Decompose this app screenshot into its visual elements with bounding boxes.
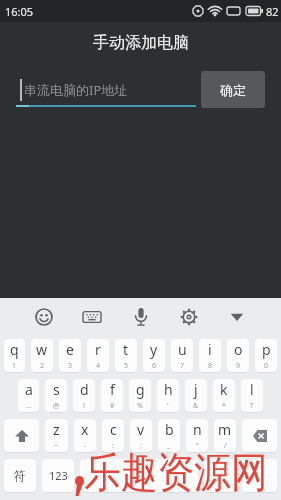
button[interactable]: b xyxy=(158,419,180,452)
button[interactable]: y xyxy=(143,339,165,372)
button[interactable]: u xyxy=(171,339,193,372)
button[interactable]: v xyxy=(130,419,152,452)
staticText: 16:05 xyxy=(5,4,34,19)
staticText: 1 xyxy=(12,361,17,371)
staticText: o xyxy=(234,340,243,359)
button[interactable]: g xyxy=(129,379,151,412)
staticText: ! xyxy=(83,401,85,411)
staticText: 7 xyxy=(180,361,185,371)
staticText: h xyxy=(164,380,173,399)
button[interactable]: t xyxy=(115,339,137,372)
button[interactable]: k xyxy=(213,379,235,412)
staticText: n xyxy=(193,420,202,439)
button[interactable]: x xyxy=(74,419,96,452)
staticText: 2 xyxy=(40,361,45,371)
staticText: ... xyxy=(26,401,32,411)
staticText: ? xyxy=(250,401,254,411)
button[interactable]: s xyxy=(45,379,67,412)
button[interactable]: h xyxy=(157,379,179,412)
staticText: c xyxy=(110,420,117,439)
staticText: 。 xyxy=(214,468,226,483)
staticText: y xyxy=(150,340,158,359)
staticText: u xyxy=(178,340,187,359)
staticText: t xyxy=(123,340,129,359)
staticText: 4 xyxy=(96,361,101,371)
button[interactable]: q xyxy=(4,339,25,372)
staticText: d xyxy=(80,380,89,399)
staticText: 9 xyxy=(236,361,241,371)
staticText: ~ xyxy=(54,441,59,451)
staticText: 123 xyxy=(49,468,68,483)
staticText: 串流电脑的IP地址 xyxy=(24,81,128,99)
staticText: z xyxy=(53,420,60,439)
staticText: v xyxy=(137,420,145,439)
button[interactable]: l xyxy=(241,379,263,412)
staticText: ' xyxy=(167,401,169,411)
button[interactable] xyxy=(4,419,39,452)
staticText: 符 xyxy=(14,468,26,483)
staticText: x xyxy=(81,420,89,439)
button[interactable]: c xyxy=(102,419,124,452)
button[interactable]: w xyxy=(31,339,53,372)
staticText: f xyxy=(110,380,115,399)
button[interactable]: p xyxy=(255,339,277,372)
staticText: g xyxy=(136,380,145,399)
button[interactable] xyxy=(80,459,198,492)
staticText: : xyxy=(112,441,114,451)
staticText: i xyxy=(208,340,212,359)
button[interactable]: i xyxy=(199,339,221,372)
button[interactable]: m xyxy=(214,419,236,452)
staticText: 确定 xyxy=(220,82,246,98)
staticText: p xyxy=(262,340,271,359)
staticText: 8 xyxy=(208,361,213,371)
button[interactable]: r xyxy=(87,339,109,372)
button[interactable]: f xyxy=(101,379,123,412)
staticText: m xyxy=(218,420,232,439)
staticText: l xyxy=(250,380,254,399)
button[interactable] xyxy=(242,419,277,452)
button[interactable] xyxy=(125,301,157,333)
button[interactable] xyxy=(173,301,205,333)
button[interactable]: j xyxy=(185,379,207,412)
staticText: * xyxy=(222,401,226,411)
staticText: j xyxy=(194,380,198,399)
button[interactable]: d xyxy=(73,379,95,412)
staticText: 乐趣资源网 xyxy=(84,447,268,500)
button[interactable]: 123 xyxy=(42,459,74,492)
staticText: e xyxy=(66,340,74,359)
staticText: s xyxy=(53,380,60,399)
staticText: k xyxy=(220,380,228,399)
button[interactable]: o xyxy=(227,339,249,372)
staticText: / xyxy=(224,441,227,451)
staticText: % xyxy=(137,401,143,411)
staticText: - xyxy=(84,441,87,451)
staticText: 82 xyxy=(266,4,279,19)
staticText: r xyxy=(95,340,101,359)
staticText: " xyxy=(196,441,199,451)
staticText: & xyxy=(193,401,199,411)
button[interactable] xyxy=(28,301,60,333)
staticText: w xyxy=(36,340,48,359)
staticText: 手动添加电脑 xyxy=(93,33,189,53)
button[interactable]: 确定 xyxy=(201,71,265,108)
staticText: q xyxy=(10,340,19,359)
staticText: a xyxy=(25,380,33,399)
staticText: b xyxy=(165,420,174,439)
button[interactable] xyxy=(221,301,253,333)
staticText: 6 xyxy=(152,361,157,371)
staticText: 3 xyxy=(68,361,73,371)
button[interactable]: z xyxy=(45,419,68,452)
staticText: 5 xyxy=(124,361,129,371)
button[interactable]: 符 xyxy=(4,459,36,492)
button[interactable]: a xyxy=(18,379,39,412)
button[interactable] xyxy=(242,459,277,492)
button[interactable] xyxy=(76,301,108,333)
staticText: ; xyxy=(140,441,142,451)
staticText: 0 xyxy=(264,361,269,371)
button[interactable]: e xyxy=(59,339,81,372)
button[interactable]: 。 xyxy=(204,459,236,492)
button[interactable]: n xyxy=(186,419,208,452)
staticText: _ xyxy=(167,441,171,451)
staticText: # xyxy=(110,401,115,411)
staticText: @ xyxy=(53,401,60,411)
